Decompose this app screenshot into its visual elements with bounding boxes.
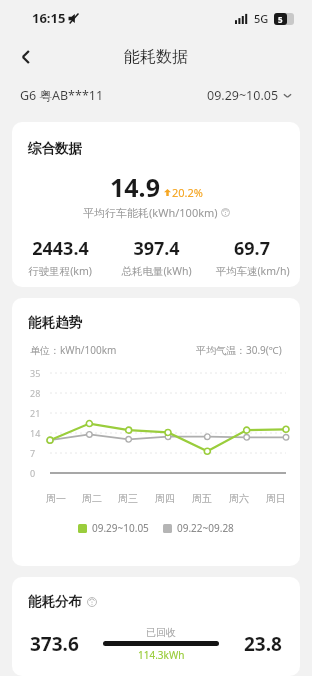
staticText: 周三	[118, 492, 138, 505]
staticText: 09.22~09.28	[177, 521, 234, 535]
staticText: 周五	[192, 492, 212, 505]
staticText: 373.6	[30, 631, 79, 657]
staticText: 7	[30, 447, 36, 459]
staticText: 能耗数据	[124, 47, 188, 67]
staticText: 5	[278, 14, 283, 25]
staticText: 行驶里程(km)	[28, 264, 92, 278]
staticText: 28	[30, 387, 41, 399]
staticText: 周日	[266, 492, 286, 505]
staticText: 69.7	[234, 236, 270, 261]
staticText: 16:15	[32, 9, 66, 27]
staticText: 单位：kWh/100km	[30, 343, 117, 357]
staticText: 已回收	[146, 626, 176, 639]
staticText: 0	[30, 467, 36, 479]
staticText: 5G	[254, 11, 269, 26]
staticText: 09.29~10.05	[207, 87, 279, 104]
staticText: 2443.4	[32, 236, 89, 261]
staticText: 平均车速(km/h)	[215, 264, 290, 278]
staticText: 平均行车能耗(kWh/100km)	[83, 205, 218, 220]
staticText: 21	[30, 407, 41, 419]
staticText: 综合数据	[28, 140, 82, 157]
staticText: 23.8	[244, 631, 282, 657]
staticText: 平均气温：30.9(℃)	[196, 343, 282, 357]
button[interactable]: 09.29~10.05	[207, 87, 292, 104]
staticText: 14.9	[110, 170, 160, 204]
staticText: 周六	[229, 492, 249, 505]
staticText: 周一	[46, 492, 66, 505]
staticText: 09.29~10.05	[92, 521, 149, 535]
button[interactable]: G6 粤AB***11	[20, 87, 104, 104]
staticText: 20.2%	[172, 185, 203, 200]
staticText: 周二	[82, 492, 102, 505]
staticText: 397.4	[133, 236, 180, 261]
staticText: 35	[30, 367, 41, 379]
staticText: 114.3kWh	[138, 648, 185, 662]
button[interactable]: Back	[8, 39, 44, 75]
staticText: 周四	[155, 492, 175, 505]
staticText: 能耗分布	[28, 593, 82, 610]
staticText: 14	[30, 427, 41, 439]
staticText: 能耗趋势	[28, 314, 82, 331]
staticText: 总耗电量(kWh)	[121, 264, 192, 278]
